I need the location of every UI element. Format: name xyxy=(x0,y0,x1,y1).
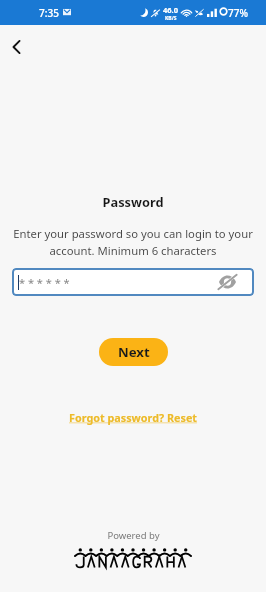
staticText: 77% xyxy=(228,6,248,20)
button[interactable]: Next xyxy=(99,338,168,366)
staticText: * * * * * * xyxy=(19,275,70,290)
button[interactable]: Show password xyxy=(216,271,238,293)
staticText: KB/S xyxy=(165,15,177,22)
staticText: Enter your password so you can login to … xyxy=(11,226,255,258)
staticText: Powered by xyxy=(107,529,160,542)
staticText: 46.0 xyxy=(163,5,178,15)
staticText: Next xyxy=(118,343,150,361)
button[interactable]: Back xyxy=(2,25,32,69)
staticText: 7:35 xyxy=(39,6,59,20)
staticText: Password xyxy=(0,193,266,210)
button[interactable]: Forgot password? Reset xyxy=(69,410,198,425)
button[interactable]: * * * * * * xyxy=(12,268,254,296)
